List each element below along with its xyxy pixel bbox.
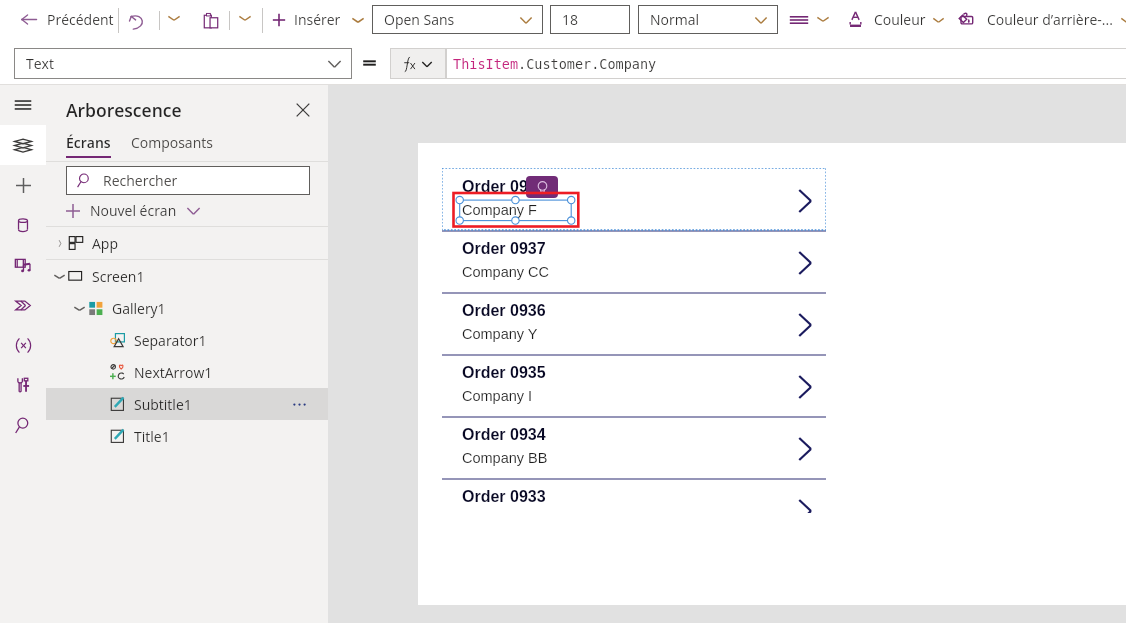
button[interactable]: Search	[0, 405, 46, 445]
staticText: App	[92, 234, 118, 253]
button[interactable]: Couleur d’arrière-...	[954, 6, 1126, 33]
staticText: Précédent	[47, 10, 114, 29]
button[interactable]: Couleur	[845, 6, 948, 33]
staticText: Title1	[134, 427, 170, 446]
staticText: Composants	[131, 133, 213, 152]
button[interactable]: Variables	[0, 325, 46, 365]
staticText: Order 0937	[462, 240, 546, 258]
staticText: Company F	[462, 202, 537, 218]
staticText: Rechercher	[103, 171, 178, 190]
button[interactable]: Separator1	[46, 324, 328, 356]
button[interactable]: Order 0933	[442, 478, 826, 513]
button[interactable]: Order 0935	[442, 354, 826, 416]
button[interactable]: Title1	[46, 420, 328, 452]
button[interactable]: Close	[290, 97, 316, 123]
staticText: Couleur d’arrière-...	[987, 10, 1113, 29]
button[interactable]: Order 0936	[442, 292, 826, 354]
button[interactable]: Order 0934	[442, 416, 826, 478]
button[interactable]: NextArrow1	[46, 356, 328, 388]
staticText: Order 0935	[462, 364, 546, 382]
staticText: Couleur	[874, 10, 926, 29]
button[interactable]: Insérer	[268, 6, 368, 33]
staticText: Text	[26, 54, 54, 73]
button[interactable]: Paste	[203, 12, 219, 30]
button[interactable]: Composants	[131, 133, 213, 152]
button[interactable]: Data	[0, 205, 46, 245]
staticText: Subtitle1	[134, 395, 192, 414]
button[interactable]: Text	[14, 48, 352, 79]
button[interactable]: Écrans	[66, 133, 111, 158]
staticText: Order 0933	[462, 488, 546, 506]
staticText: Order 0934	[462, 426, 546, 444]
staticText: Nouvel écran	[90, 201, 177, 220]
staticText: Normal	[650, 10, 699, 29]
button[interactable]: Formula options	[390, 48, 446, 79]
button[interactable]: Order 0938	[442, 168, 826, 230]
button[interactable]: Open Sans	[372, 5, 543, 34]
staticText: 18	[562, 10, 579, 29]
staticText: Écrans	[66, 133, 111, 152]
staticText: Screen1	[92, 267, 145, 286]
button[interactable]: Nouvel écran	[63, 195, 202, 226]
button[interactable]: Précédent	[15, 6, 119, 33]
button[interactable]: Suggestions	[526, 176, 558, 198]
button[interactable]: Menu	[0, 85, 46, 125]
staticText: Company I	[462, 388, 533, 404]
button[interactable]: Media	[0, 245, 46, 285]
button[interactable]: Gallery1	[46, 292, 328, 324]
button[interactable]: More options	[286, 391, 312, 417]
staticText: Company BB	[462, 450, 548, 466]
staticText: ThisItem.Customer.Company	[453, 56, 657, 72]
button[interactable]: App	[46, 227, 328, 259]
button[interactable]: Screen1	[46, 260, 328, 292]
button[interactable]: Alignment options	[817, 15, 829, 23]
staticText: Arborescence	[66, 98, 182, 122]
staticText: Insérer	[294, 10, 341, 29]
button[interactable]: Order 0937	[442, 230, 826, 292]
staticText: NextArrow1	[134, 363, 213, 382]
button[interactable]: Tree view	[0, 125, 46, 165]
staticText: Gallery1	[112, 299, 166, 318]
button[interactable]: Insert	[0, 165, 46, 205]
button[interactable]: Subtitle1	[46, 388, 328, 420]
staticText: Company CC	[462, 264, 550, 280]
button[interactable]: Text alignment	[789, 12, 809, 28]
button[interactable]: Paste options	[239, 14, 251, 22]
button[interactable]: 18	[550, 5, 630, 34]
button[interactable]: ThisItem.Customer.Company	[446, 48, 1126, 79]
staticText: Order 0938	[462, 178, 546, 196]
button[interactable]: Advanced tools	[0, 365, 46, 405]
staticText: Open Sans	[384, 10, 455, 29]
staticText: Order 0936	[462, 302, 546, 320]
button[interactable]: Power Automate	[0, 285, 46, 325]
button[interactable]: Rechercher	[66, 166, 310, 195]
button[interactable]: Undo options	[168, 14, 180, 22]
staticText: Separator1	[134, 331, 207, 350]
button[interactable]: Normal	[638, 5, 778, 34]
button[interactable]: Undo	[128, 12, 147, 30]
staticText: Company Y	[462, 326, 538, 342]
